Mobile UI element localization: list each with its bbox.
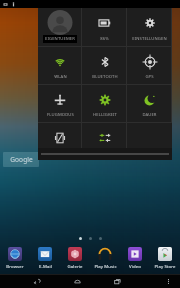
staticText: HELLIGKEIT: [93, 112, 117, 118]
staticText: Galerie: [67, 263, 83, 269]
staticText: EINSTELLUNGEN: [132, 36, 167, 42]
staticText: Browser: [6, 263, 24, 269]
button[interactable]: Play Music: [90, 246, 120, 272]
staticText: E-Mail: [39, 263, 52, 269]
staticText: Google: [10, 155, 33, 164]
button[interactable]: Close quick settings: [38, 148, 172, 160]
staticText: BLUETOOTH: [92, 74, 118, 80]
staticText: FLUGMODUS: [47, 112, 74, 118]
staticText: Play Music: [94, 263, 117, 269]
button[interactable]: WLAN: [38, 47, 82, 84]
button[interactable]: BLUETOOTH: [82, 47, 127, 84]
button[interactable]: AUTOM. DREHEN: [38, 123, 82, 160]
button[interactable]: E-Mail: [30, 246, 60, 272]
button[interactable]: HELLIGKEIT: [82, 85, 127, 122]
staticText: AUDIOPROFILE: [89, 150, 121, 156]
button[interactable]: Google: [3, 152, 39, 167]
staticText: DAUER: [142, 112, 157, 118]
button[interactable]: Home: [69, 274, 85, 288]
staticText: EIGENTUEMER: [45, 36, 75, 42]
button[interactable]: 86%: [82, 8, 127, 46]
button[interactable]: FLUGMODUS: [38, 85, 82, 122]
button[interactable]: DAUER: [127, 85, 172, 122]
button[interactable]: GPS: [127, 47, 172, 84]
button[interactable]: Galerie: [60, 246, 90, 272]
button[interactable]: Back: [29, 274, 45, 288]
button[interactable]: More options: [160, 274, 176, 288]
button[interactable]: EIGENTUEMER: [38, 8, 82, 46]
button[interactable]: Recents: [109, 274, 125, 288]
staticText: Video: [129, 263, 141, 269]
button[interactable]: Play Store: [150, 246, 180, 272]
staticText: Play Store: [154, 263, 176, 269]
staticText: 86%: [100, 36, 109, 42]
staticText: AUTOM. DREHEN: [42, 150, 78, 156]
button[interactable]: Browser: [0, 246, 30, 272]
staticText: WLAN: [54, 74, 67, 80]
button[interactable]: AUDIOPROFILE: [82, 123, 127, 160]
button[interactable]: EINSTELLUNGEN: [127, 8, 172, 46]
button[interactable]: Video: [120, 246, 150, 272]
staticText: GPS: [145, 74, 154, 80]
